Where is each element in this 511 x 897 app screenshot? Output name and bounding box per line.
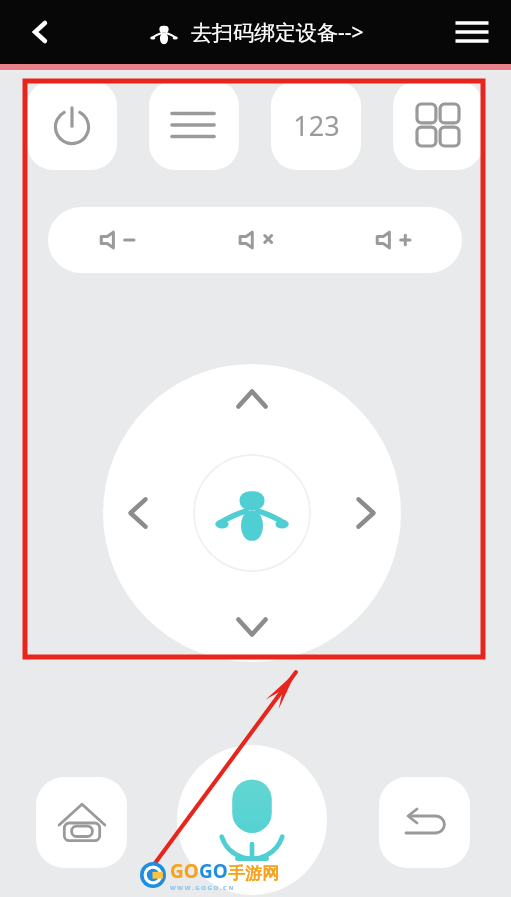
button[interactable]: Return (379, 777, 470, 868)
button[interactable]: Left (103, 458, 173, 568)
staticText: GO (199, 858, 228, 884)
button[interactable]: Apps (393, 80, 483, 170)
button[interactable]: Mute (186, 207, 324, 273)
button[interactable]: OK (193, 454, 311, 572)
button[interactable]: Power (27, 80, 117, 170)
staticText: GO (170, 858, 199, 884)
staticText: 手游网 (228, 863, 279, 884)
button[interactable]: Back (14, 9, 60, 55)
button[interactable]: Voice (177, 745, 327, 895)
button[interactable]: Menu (449, 9, 495, 55)
staticText: 123 (293, 107, 340, 144)
button[interactable]: Down (197, 592, 307, 662)
button[interactable]: Volume up (324, 207, 462, 273)
button[interactable]: Up (197, 364, 307, 434)
staticText: W W W . G O G O . C N (170, 884, 234, 892)
button[interactable]: Right (331, 458, 401, 568)
button[interactable]: List (149, 80, 239, 170)
staticText: 去扫码绑定设备--> (191, 18, 364, 47)
button[interactable]: Volume down (48, 207, 186, 273)
button[interactable]: Home (36, 777, 127, 868)
button[interactable]: Numbers (271, 80, 361, 170)
